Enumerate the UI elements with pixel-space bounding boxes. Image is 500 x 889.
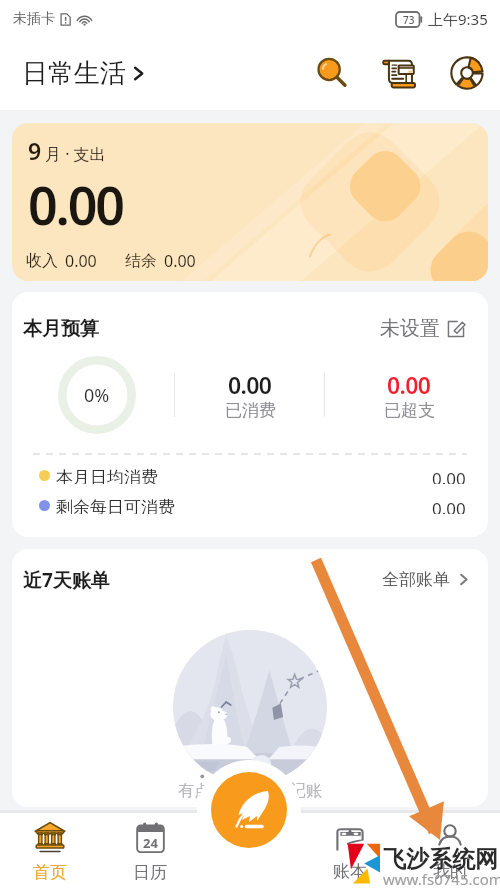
- button[interactable]: 9: [12, 123, 488, 281]
- staticText: 未插卡: [13, 10, 55, 28]
- staticText: 0%: [84, 383, 110, 408]
- staticText: 近7天账单: [23, 567, 110, 593]
- staticText: 0.00: [164, 250, 196, 272]
- staticText: 0.00: [228, 369, 272, 400]
- staticText: 0.00: [432, 497, 466, 514]
- button[interactable]: 首页: [8, 815, 92, 889]
- staticText: 有点空哦，快来记账: [178, 781, 322, 801]
- button[interactable]: 未设置: [376, 312, 469, 345]
- staticText: 未设置: [380, 316, 440, 341]
- button[interactable]: 24: [108, 815, 192, 889]
- staticText: 我的: [433, 861, 467, 882]
- staticText: 0.00: [65, 250, 97, 272]
- button[interactable]: 剩余每日可消费: [39, 497, 466, 514]
- staticText: www.fs0745.com: [383, 869, 500, 889]
- staticText: 已超支: [384, 400, 435, 421]
- staticText: 9: [28, 135, 42, 166]
- staticText: 日常生活: [22, 57, 126, 90]
- staticText: 0.00: [28, 169, 123, 240]
- staticText: 上午9:35: [428, 9, 488, 29]
- staticText: 剩余每日可消费: [56, 497, 175, 514]
- staticText: 已消费: [225, 400, 276, 421]
- staticText: 本月日均消费: [56, 467, 158, 484]
- button[interactable]: 我的: [408, 815, 492, 889]
- button[interactable]: 本月日均消费: [39, 467, 466, 484]
- staticText: 收入: [26, 251, 58, 271]
- staticText: 0.00: [432, 467, 466, 484]
- button[interactable]: Search: [308, 49, 356, 97]
- staticText: 24: [143, 834, 158, 852]
- button[interactable]: 账本: [308, 815, 392, 889]
- button[interactable]: Add record: [211, 772, 287, 848]
- staticText: 本月预算: [23, 317, 99, 341]
- button[interactable]: Statistics: [443, 49, 491, 97]
- button[interactable]: 日常生活: [22, 57, 147, 90]
- staticText: 0.00: [387, 369, 431, 400]
- staticText: 全部账单: [382, 569, 450, 590]
- staticText: 日历: [133, 862, 167, 883]
- staticText: 月 · 支出: [45, 143, 106, 165]
- button[interactable]: Bills: [375, 49, 423, 97]
- staticText: 首页: [33, 862, 67, 883]
- staticText: 结余: [125, 251, 157, 271]
- button[interactable]: 全部账单: [378, 565, 474, 594]
- staticText: 账本: [333, 861, 367, 882]
- staticText: 飞沙系统网: [383, 845, 498, 874]
- staticText: 73: [403, 13, 415, 27]
